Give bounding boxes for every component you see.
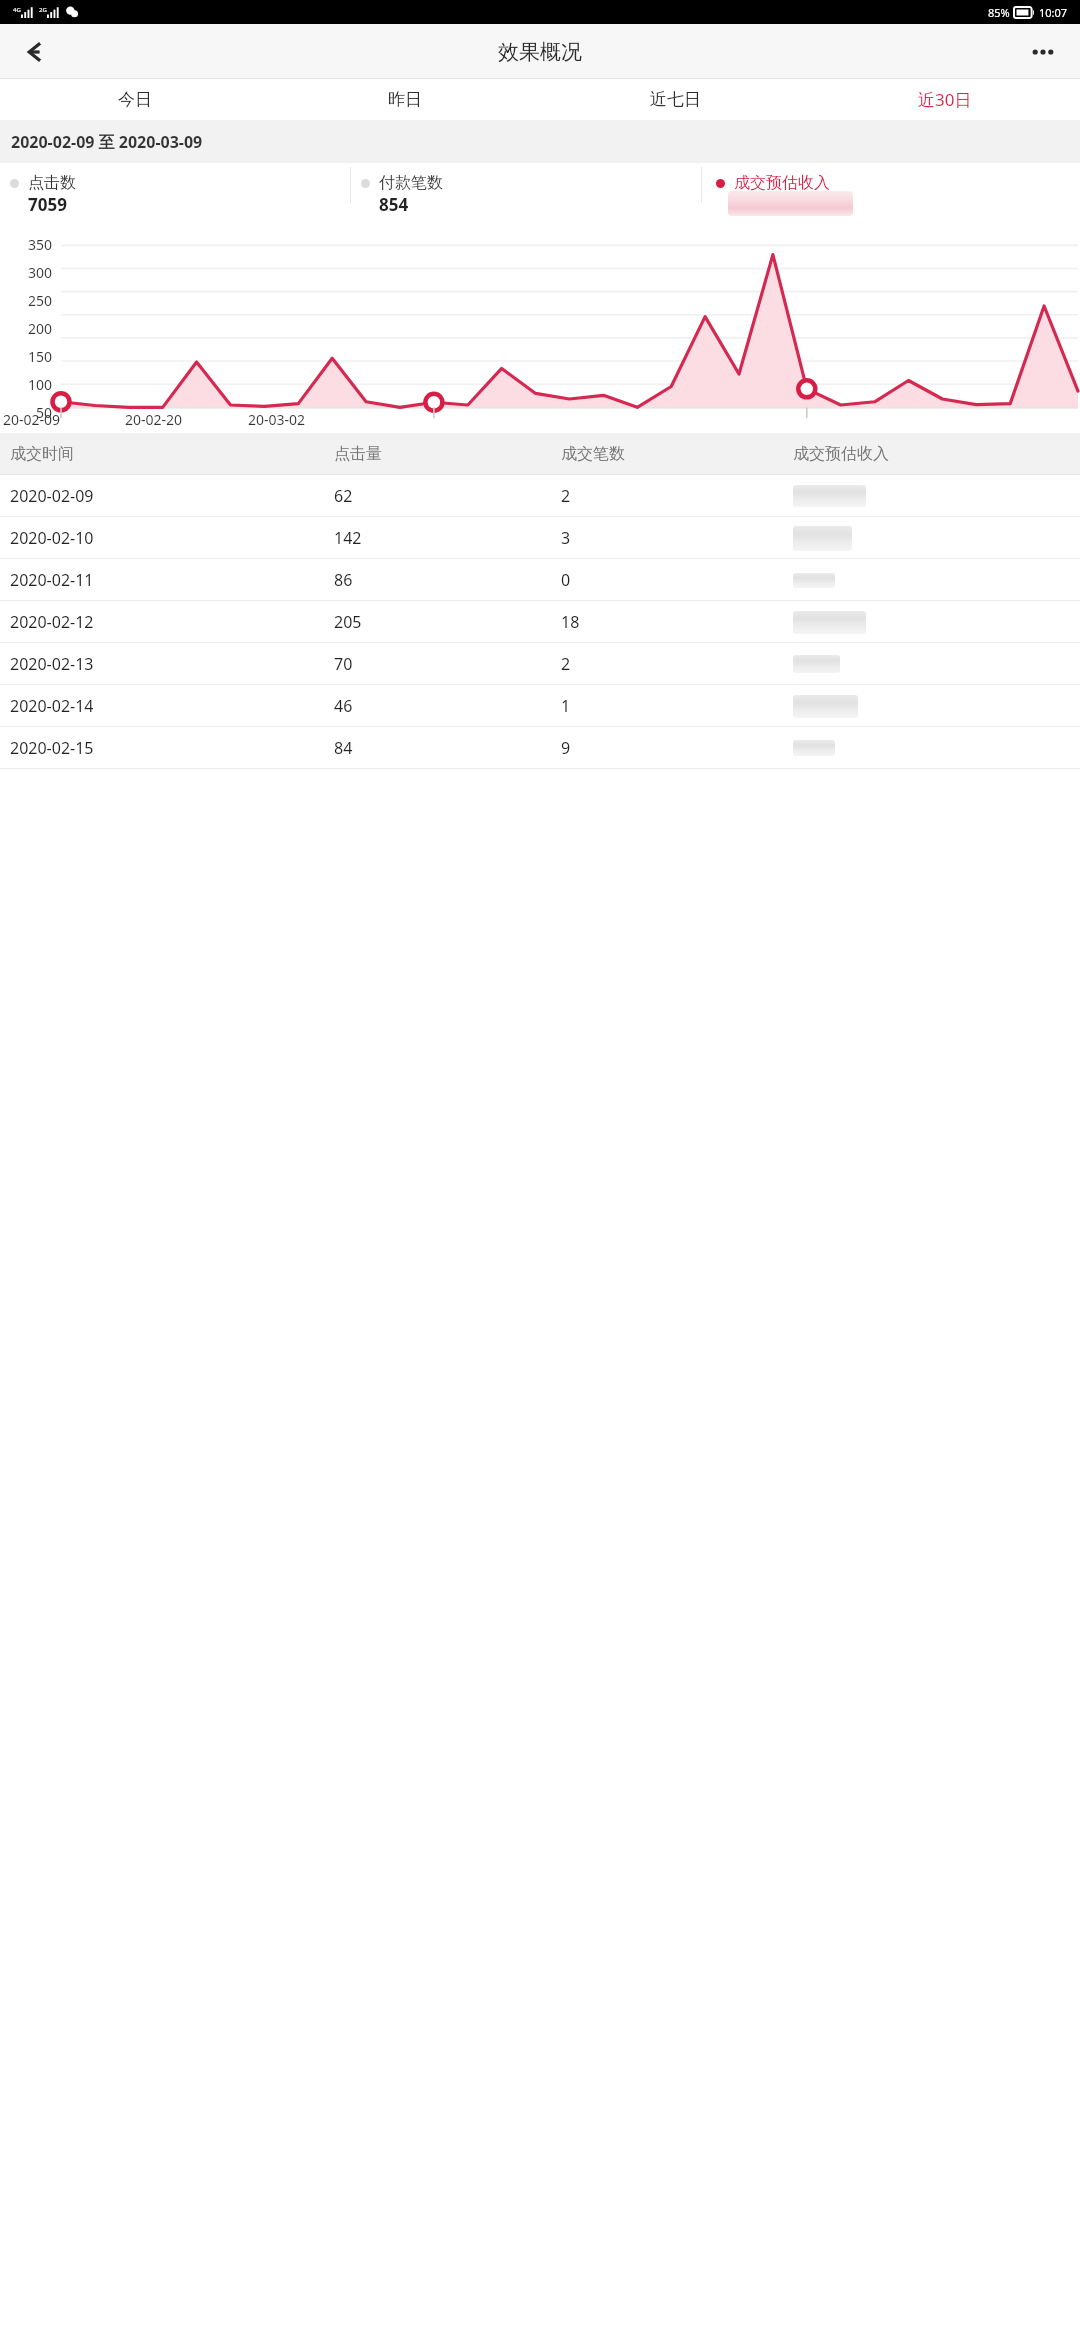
staticText: 2020-02-09 至 2020-03-09	[11, 131, 203, 153]
staticText: 2020-02-12	[10, 611, 94, 633]
staticText: 205	[334, 611, 362, 633]
staticText: 854	[379, 193, 409, 216]
staticText: 点击量	[334, 444, 382, 464]
staticText: 2020-02-10	[10, 527, 94, 549]
button[interactable]: 昨日	[270, 79, 540, 120]
staticText: 成交笔数	[561, 444, 625, 464]
staticText: 2	[561, 485, 571, 507]
staticText: 46	[334, 695, 353, 717]
staticText: 成交时间	[10, 444, 74, 464]
staticText: 2020-02-14	[10, 695, 94, 717]
staticText: 50	[2, 403, 52, 422]
staticText: 1	[561, 695, 571, 717]
button[interactable]: 2020-02-13	[0, 643, 1080, 685]
staticText: 62	[334, 485, 353, 507]
staticText: 成交预估收入	[793, 444, 889, 464]
staticText: 18	[561, 611, 580, 633]
staticText: 效果概况	[498, 39, 582, 65]
staticText: 350	[2, 235, 52, 254]
staticText: 150	[2, 347, 52, 366]
button[interactable]: More options	[1016, 25, 1070, 79]
staticText: 86	[334, 569, 353, 591]
staticText: 84	[334, 737, 353, 759]
button[interactable]: 成交预估收入	[702, 163, 1080, 223]
button[interactable]: 近30日	[810, 79, 1080, 120]
button[interactable]: 2020-02-14	[0, 685, 1080, 727]
staticText: 20-02-09	[3, 410, 61, 429]
staticText: 2020-02-09	[10, 485, 94, 507]
staticText: 70	[334, 653, 353, 675]
staticText: 2020-02-11	[10, 569, 94, 591]
staticText: 142	[334, 527, 362, 549]
staticText: 200	[2, 319, 52, 338]
button[interactable]: 2020-02-15	[0, 727, 1080, 769]
staticText: 2G	[39, 6, 47, 14]
button[interactable]: 付款笔数	[351, 163, 701, 223]
staticText: 20-02-20	[125, 410, 183, 429]
button[interactable]: Back	[10, 25, 64, 79]
button[interactable]: 近七日	[540, 79, 810, 120]
staticText: 20-03-02	[248, 410, 306, 429]
staticText: 300	[2, 263, 52, 282]
staticText: 10:07	[1039, 5, 1068, 20]
staticText: 100	[2, 375, 52, 394]
staticText: 近30日	[918, 88, 972, 111]
button[interactable]: 今日	[0, 79, 270, 120]
staticText: 点击数	[28, 173, 76, 193]
staticText: 85%	[988, 5, 1010, 20]
button[interactable]: 2020-02-11	[0, 559, 1080, 601]
staticText: 近七日	[650, 89, 701, 110]
staticText: 付款笔数	[379, 173, 443, 193]
staticText: 2	[561, 653, 571, 675]
button[interactable]: 2020-02-09	[0, 475, 1080, 517]
staticText: 2020-02-15	[10, 737, 94, 759]
staticText: 9	[561, 737, 571, 759]
staticText: 成交预估收入	[734, 173, 830, 193]
staticText: 7059	[28, 193, 67, 216]
staticText: 0	[561, 569, 571, 591]
button[interactable]: 点击数	[0, 163, 350, 223]
staticText: 昨日	[388, 89, 422, 110]
staticText: 3	[561, 527, 571, 549]
staticText: 今日	[118, 89, 152, 110]
staticText: 4G	[13, 6, 21, 14]
staticText: 250	[2, 291, 52, 310]
staticText: 2020-02-13	[10, 653, 94, 675]
button[interactable]: 2020-02-12	[0, 601, 1080, 643]
button[interactable]: 2020-02-10	[0, 517, 1080, 559]
